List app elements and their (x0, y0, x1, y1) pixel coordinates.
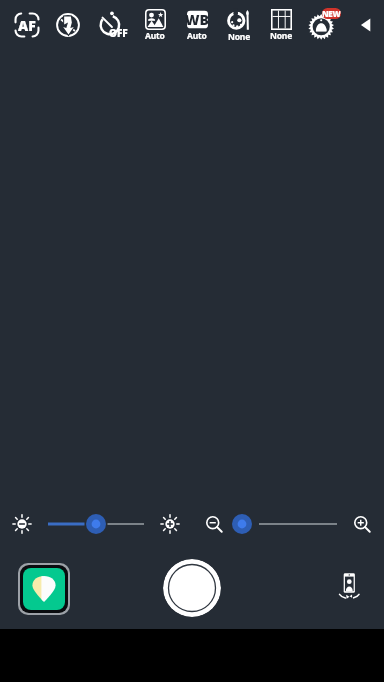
button[interactable]: Zoom in (350, 512, 374, 536)
button[interactable]: Flash off (47, 0, 89, 50)
staticText: None (228, 31, 251, 43)
button[interactable]: Collapse (348, 0, 384, 50)
button[interactable]: Zoom (232, 512, 337, 536)
staticText: None (270, 30, 293, 42)
button[interactable]: Settings (302, 0, 344, 50)
button[interactable]: Zoom out (202, 512, 226, 536)
staticText: AF (18, 16, 36, 35)
button[interactable]: Exposure (48, 512, 144, 536)
button[interactable]: Gallery (23, 568, 65, 610)
button[interactable]: Switch camera (330, 566, 368, 604)
staticText: Auto (145, 30, 165, 42)
button[interactable]: Color effect (218, 0, 260, 50)
button[interactable]: Autofocus (6, 0, 48, 50)
button[interactable]: Increase exposure (158, 512, 182, 536)
button[interactable]: Take photo (163, 559, 221, 617)
button[interactable]: Grid (260, 0, 302, 50)
button[interactable]: Decrease exposure (10, 512, 34, 536)
button[interactable]: Timer off (91, 0, 133, 50)
staticText: WB (185, 10, 209, 29)
staticText: OFF (109, 26, 128, 40)
button[interactable]: Scene mode (134, 0, 176, 50)
staticText: NEW (322, 8, 341, 19)
button[interactable]: White balance (176, 0, 218, 50)
staticText: Auto (187, 30, 207, 42)
